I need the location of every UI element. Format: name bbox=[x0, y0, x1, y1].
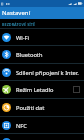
staticText: NFC bbox=[16, 122, 84, 130]
staticText: Nastavení bbox=[2, 9, 31, 17]
button[interactable]: Bluetooth bbox=[0, 46, 84, 63]
button[interactable]: Wi-Fi bbox=[0, 29, 84, 46]
staticText: Bluetooth bbox=[16, 51, 84, 59]
button[interactable]: Další... bbox=[0, 134, 84, 140]
button[interactable]: NFC bbox=[0, 117, 84, 134]
button[interactable]: Sdílení připojení k Inter. bbox=[0, 64, 84, 81]
staticText: Wi-Fi bbox=[16, 34, 84, 42]
button[interactable]: Režim Letadlo bbox=[0, 81, 84, 98]
staticText: Použití dat bbox=[16, 104, 84, 112]
staticText: Režim Letadlo bbox=[16, 86, 73, 94]
staticText: Sdílení připojení k Inter. bbox=[16, 69, 84, 77]
button[interactable]: Použití dat bbox=[0, 99, 84, 116]
staticText: BEZDRÁTOVÉ SÍTĚ bbox=[2, 22, 84, 27]
